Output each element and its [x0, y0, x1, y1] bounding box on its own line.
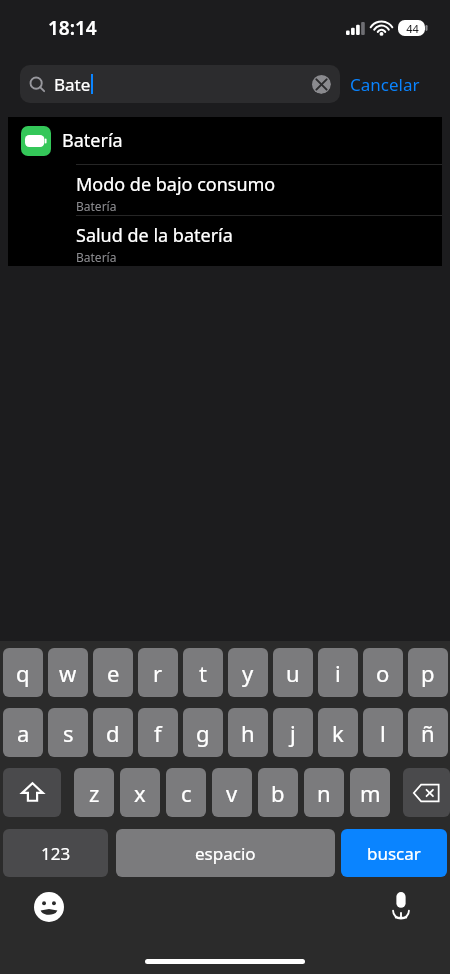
- button[interactable]: r: [138, 648, 178, 697]
- staticText: n: [317, 778, 331, 808]
- button[interactable]: i: [318, 648, 358, 697]
- button[interactable]: h: [228, 708, 268, 757]
- button[interactable]: l: [363, 708, 403, 757]
- staticText: l: [380, 718, 386, 748]
- staticText: Batería: [62, 128, 123, 153]
- staticText: Batería: [76, 198, 117, 214]
- staticText: m: [360, 778, 381, 808]
- button[interactable]: Borrar: [403, 768, 450, 817]
- staticText: 18:14: [48, 15, 97, 41]
- staticText: s: [63, 718, 74, 748]
- button[interactable]: v: [212, 768, 252, 817]
- button[interactable]: j: [273, 708, 313, 757]
- button[interactable]: z: [74, 768, 114, 817]
- staticText: t: [199, 658, 207, 688]
- staticText: a: [17, 718, 30, 748]
- button[interactable]: Mayúsculas: [3, 768, 61, 817]
- button[interactable]: ñ: [408, 708, 448, 757]
- staticText: c: [181, 778, 192, 808]
- button[interactable]: buscar: [341, 829, 447, 877]
- button[interactable]: f: [138, 708, 178, 757]
- button[interactable]: q: [3, 648, 43, 697]
- button[interactable]: g: [183, 708, 223, 757]
- button[interactable]: 123: [3, 829, 108, 877]
- staticText: e: [107, 658, 120, 688]
- staticText: p: [421, 658, 435, 688]
- button[interactable]: e: [93, 648, 133, 697]
- staticText: x: [134, 778, 146, 808]
- staticText: f: [154, 718, 162, 748]
- button[interactable]: Dictado: [384, 888, 418, 922]
- staticText: ñ: [421, 718, 435, 748]
- button[interactable]: o: [363, 648, 403, 697]
- staticText: o: [376, 658, 390, 688]
- button[interactable]: k: [318, 708, 358, 757]
- staticText: buscar: [367, 842, 421, 865]
- button[interactable]: s: [48, 708, 88, 757]
- button[interactable]: Cancelar: [340, 65, 430, 103]
- staticText: z: [89, 778, 100, 808]
- staticText: espacio: [195, 842, 256, 865]
- staticText: Modo de bajo consumo: [76, 172, 276, 197]
- staticText: Batería: [76, 249, 117, 265]
- staticText: Bate: [54, 73, 91, 96]
- button[interactable]: x: [120, 768, 160, 817]
- staticText: i: [335, 658, 341, 688]
- staticText: h: [241, 718, 255, 748]
- staticText: j: [290, 718, 296, 748]
- button[interactable]: Modo de bajo consumo: [8, 165, 442, 215]
- button[interactable]: Bate: [20, 65, 340, 103]
- button[interactable]: n: [304, 768, 344, 817]
- staticText: w: [59, 658, 77, 688]
- button[interactable]: c: [166, 768, 206, 817]
- staticText: k: [332, 718, 344, 748]
- staticText: r: [153, 658, 163, 688]
- button[interactable]: Emoji: [32, 890, 66, 924]
- staticText: Cancelar: [350, 73, 420, 96]
- staticText: b: [271, 778, 285, 808]
- button[interactable]: Batería: [8, 117, 442, 164]
- staticText: q: [16, 658, 30, 688]
- button[interactable]: w: [48, 648, 88, 697]
- staticText: 123: [41, 842, 71, 865]
- staticText: 44: [406, 21, 419, 36]
- button[interactable]: a: [3, 708, 43, 757]
- button[interactable]: u: [273, 648, 313, 697]
- staticText: Salud de la batería: [76, 223, 233, 248]
- button[interactable]: Salud de la batería: [8, 216, 442, 266]
- button[interactable]: y: [228, 648, 268, 697]
- button[interactable]: p: [408, 648, 448, 697]
- staticText: g: [196, 718, 210, 748]
- button[interactable]: Borrar texto: [311, 74, 331, 94]
- staticText: v: [226, 778, 238, 808]
- staticText: y: [242, 658, 254, 688]
- button[interactable]: d: [93, 708, 133, 757]
- button[interactable]: b: [258, 768, 298, 817]
- button[interactable]: espacio: [116, 829, 335, 877]
- staticText: u: [286, 658, 300, 688]
- button[interactable]: m: [350, 768, 390, 817]
- button[interactable]: t: [183, 648, 223, 697]
- staticText: d: [106, 718, 120, 748]
